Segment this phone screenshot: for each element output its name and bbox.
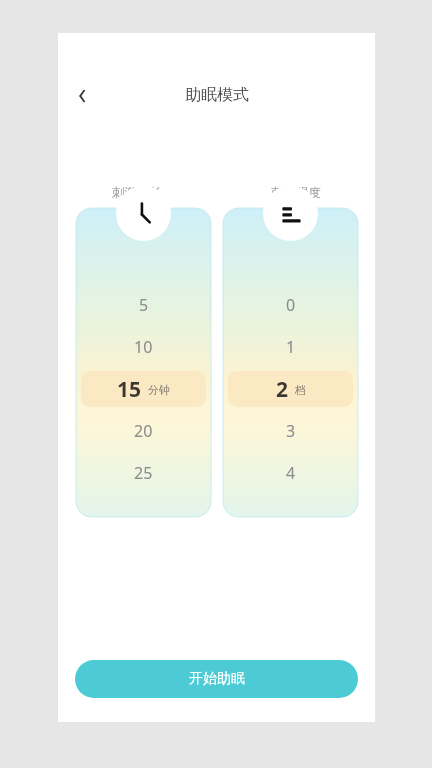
staticText: 1 — [286, 336, 296, 358]
staticText: 助眠模式 — [185, 85, 249, 105]
staticText: 3 — [286, 420, 296, 442]
staticText: 4 — [286, 462, 296, 484]
button[interactable]: 0 — [223, 287, 358, 323]
button[interactable]: Intensity — [263, 186, 318, 241]
staticText: 15 — [117, 375, 142, 404]
staticText: 0 — [286, 294, 296, 316]
button[interactable]: 开始助眠 — [75, 660, 358, 698]
staticText: 10 — [134, 336, 153, 358]
button[interactable]: 5 — [76, 287, 211, 323]
staticText: 开始助眠 — [189, 670, 245, 688]
staticText: 5 — [139, 294, 149, 316]
staticText: 20 — [134, 420, 153, 442]
button[interactable]: 15 — [81, 371, 206, 407]
button[interactable]: 10 — [76, 329, 211, 365]
button[interactable]: Back — [66, 80, 98, 112]
staticText: 分钟 — [148, 383, 170, 397]
button[interactable]: 25 — [76, 455, 211, 491]
staticText: 25 — [134, 462, 153, 484]
button[interactable]: Duration — [116, 186, 171, 241]
button[interactable]: 1 — [223, 329, 358, 365]
staticText: 2 — [276, 375, 289, 404]
staticText: 刺激时长 — [112, 185, 162, 201]
staticText: 刺激强度 — [271, 185, 321, 201]
staticText: 档 — [295, 383, 306, 397]
button[interactable]: 20 — [76, 413, 211, 449]
button[interactable]: 3 — [223, 413, 358, 449]
button[interactable]: 2 — [228, 371, 353, 407]
button[interactable]: 4 — [223, 455, 358, 491]
